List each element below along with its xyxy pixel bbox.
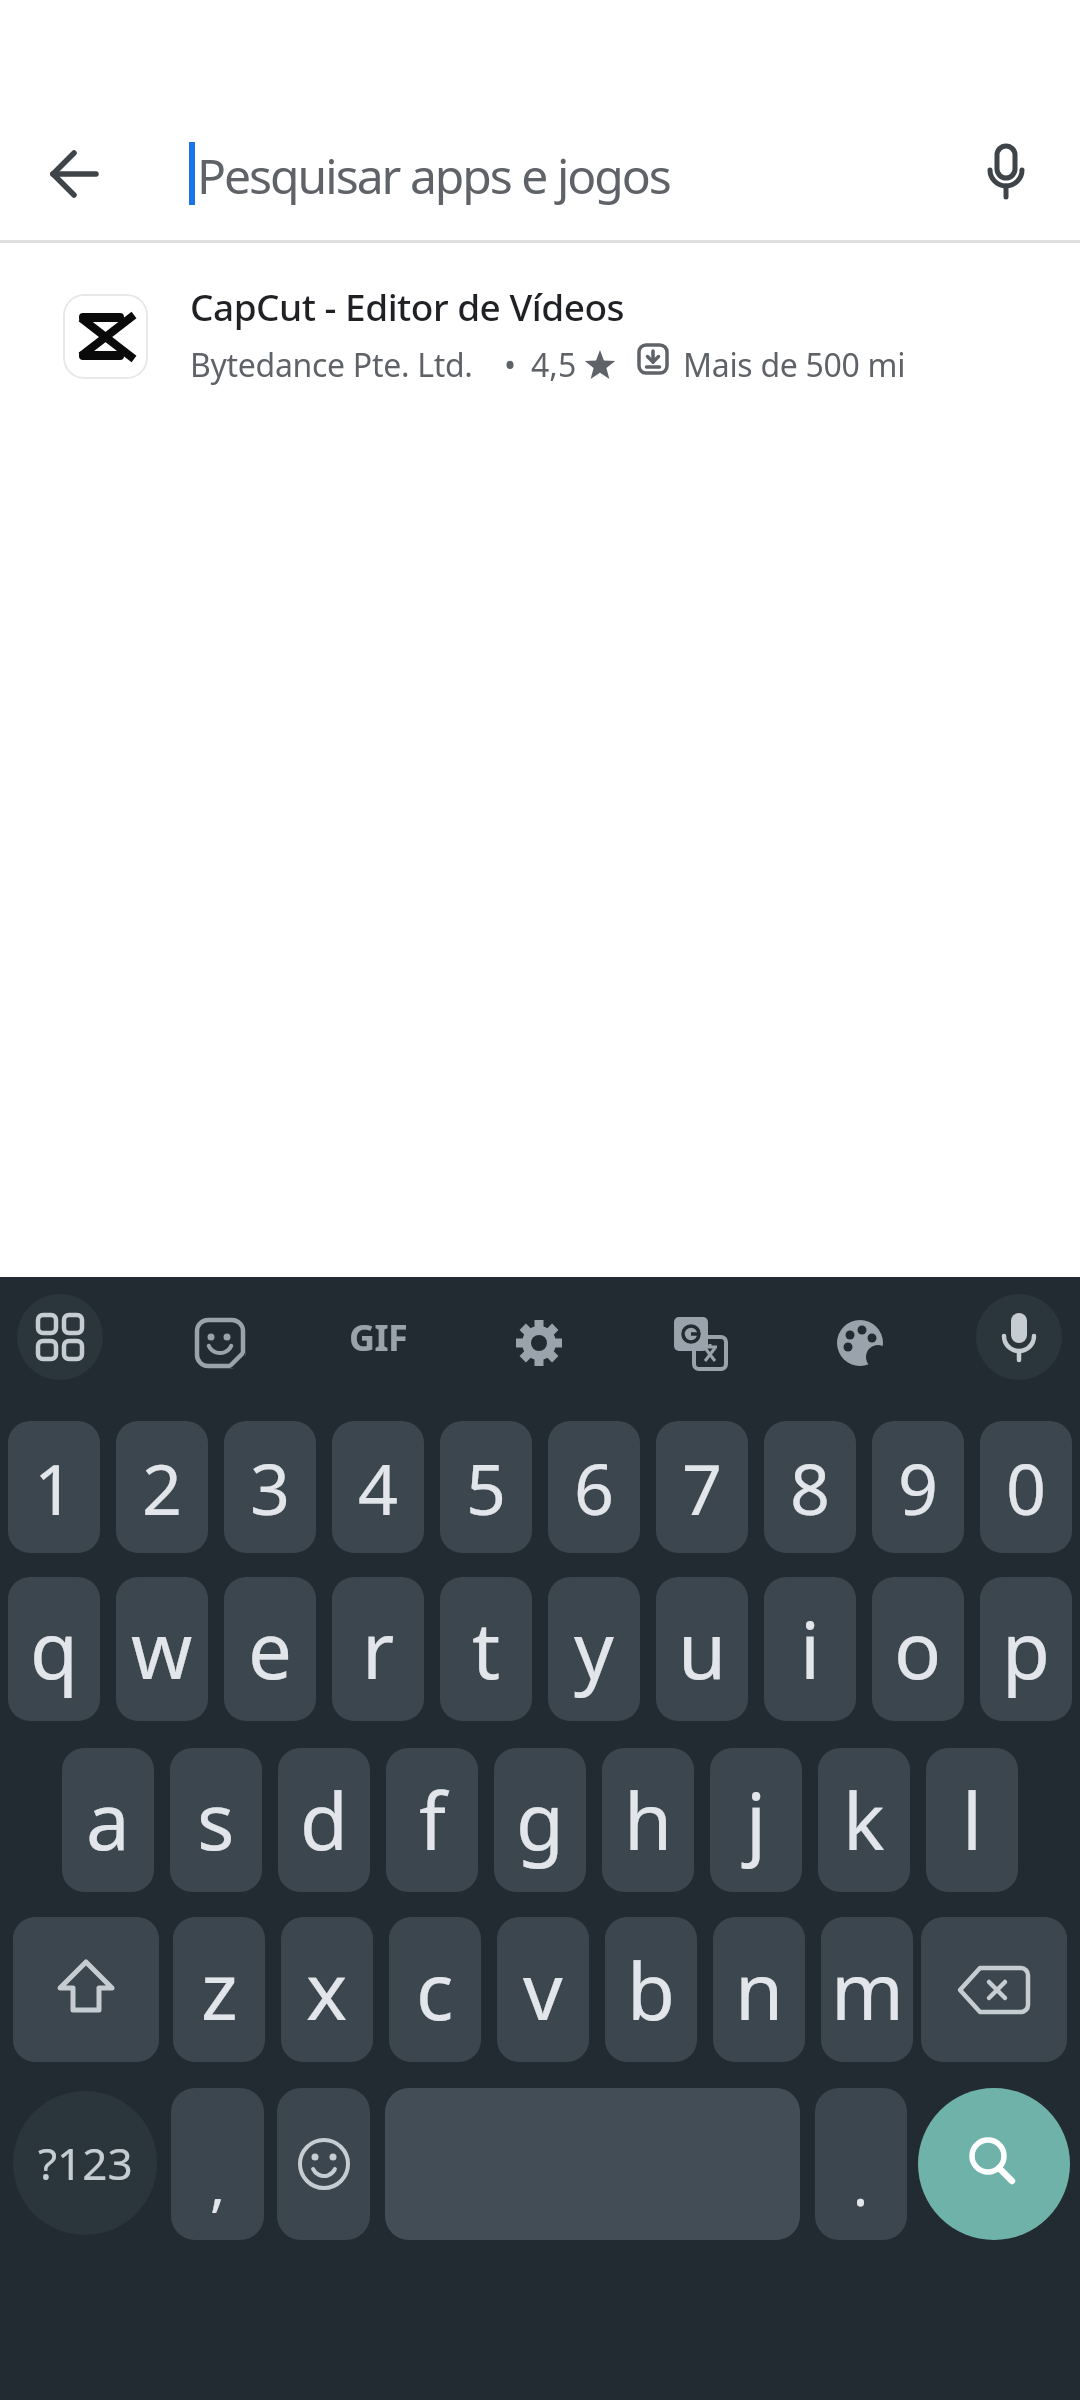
button[interactable]: d	[278, 1748, 370, 1892]
staticText: •	[504, 343, 517, 387]
button[interactable]: h	[602, 1748, 694, 1892]
button[interactable]: x	[281, 1917, 373, 2062]
button[interactable]: j	[710, 1748, 802, 1892]
staticText: GIF	[349, 1313, 408, 1362]
staticText: i	[800, 1596, 821, 1702]
staticText: ?123	[38, 2133, 133, 2193]
button[interactable]: g	[494, 1748, 586, 1892]
button[interactable]	[503, 1307, 575, 1379]
button[interactable]: t	[440, 1577, 532, 1721]
staticText: v	[523, 1937, 563, 2043]
staticText: l	[962, 1767, 983, 1873]
staticText: 0	[1006, 1440, 1047, 1535]
staticText: 5	[466, 1440, 507, 1535]
button[interactable]: 0	[980, 1421, 1072, 1553]
button[interactable]: 9	[872, 1421, 964, 1553]
button[interactable]	[960, 126, 1052, 218]
staticText: 2	[142, 1440, 183, 1535]
staticText: e	[248, 1596, 292, 1702]
staticText: 1	[34, 1440, 75, 1535]
staticText: 3	[250, 1440, 291, 1535]
button[interactable]	[17, 1294, 103, 1380]
button[interactable]: l	[926, 1748, 1018, 1892]
button[interactable]	[824, 1307, 896, 1379]
staticText: j	[746, 1767, 767, 1873]
staticText: c	[416, 1937, 454, 2043]
button[interactable]	[976, 1294, 1062, 1380]
button[interactable]: 8	[764, 1421, 856, 1553]
staticText: m	[831, 1937, 904, 2043]
button[interactable]: ,	[171, 2088, 264, 2240]
staticText: r	[362, 1596, 395, 1702]
staticText: 4,5	[531, 343, 577, 387]
button[interactable]: i	[764, 1577, 856, 1721]
button[interactable]: GIF	[330, 1307, 426, 1367]
button[interactable]: 1	[8, 1421, 100, 1553]
staticText: 4	[358, 1440, 399, 1535]
staticText: y	[574, 1596, 614, 1702]
staticText: z	[201, 1937, 238, 2043]
staticText: .	[853, 2146, 869, 2222]
button[interactable]: o	[872, 1577, 964, 1721]
button[interactable]: c	[389, 1917, 481, 2062]
staticText: CapCut - Editor de Vídeos	[190, 281, 624, 331]
staticText: p	[1002, 1596, 1050, 1702]
button[interactable]: m	[821, 1917, 913, 2062]
button[interactable]: y	[548, 1577, 640, 1721]
button[interactable]	[277, 2088, 370, 2240]
staticText: f	[419, 1767, 446, 1873]
staticText: h	[624, 1767, 673, 1873]
staticText: k	[843, 1767, 885, 1873]
button[interactable]: r	[332, 1577, 424, 1721]
button[interactable]	[30, 130, 120, 220]
button[interactable]: z	[173, 1917, 265, 2062]
button[interactable]: w	[116, 1577, 208, 1721]
button[interactable]: 4	[332, 1421, 424, 1553]
staticText: q	[30, 1596, 78, 1702]
button[interactable]	[664, 1307, 736, 1379]
button[interactable]: .	[815, 2088, 907, 2240]
button[interactable]	[918, 2088, 1070, 2240]
button[interactable]: 3	[224, 1421, 316, 1553]
staticText: 9	[898, 1440, 939, 1535]
button[interactable]	[921, 1917, 1067, 2062]
staticText: 8	[790, 1440, 831, 1535]
button[interactable]: b	[605, 1917, 697, 2062]
button[interactable]: 5	[440, 1421, 532, 1553]
button[interactable]: s	[170, 1748, 262, 1892]
staticText: 6	[574, 1440, 615, 1535]
button[interactable]	[184, 1307, 256, 1379]
button[interactable]: f	[386, 1748, 478, 1892]
button[interactable]: n	[713, 1917, 805, 2062]
button[interactable]: CapCut - Editor de Vídeos	[0, 250, 1080, 422]
button[interactable]	[13, 1917, 159, 2062]
staticText: 7	[682, 1440, 723, 1535]
staticText: w	[131, 1596, 193, 1702]
button[interactable]: q	[8, 1577, 100, 1721]
button[interactable]: Pesquisar apps e jogos	[197, 120, 897, 230]
button[interactable]: 6	[548, 1421, 640, 1553]
staticText: b	[627, 1937, 675, 2043]
button[interactable]: k	[818, 1748, 910, 1892]
staticText: o	[894, 1596, 942, 1702]
staticText: x	[306, 1937, 348, 2043]
button[interactable]: p	[980, 1577, 1072, 1721]
button[interactable]: 7	[656, 1421, 748, 1553]
button[interactable]: ?123	[13, 2091, 157, 2235]
button[interactable]: a	[62, 1748, 154, 1892]
staticText: Pesquisar apps e jogos	[197, 143, 670, 208]
staticText: a	[86, 1767, 130, 1873]
staticText: t	[472, 1596, 501, 1702]
button[interactable]: 2	[116, 1421, 208, 1553]
button[interactable]: u	[656, 1577, 748, 1721]
button[interactable]	[385, 2088, 800, 2240]
staticText: n	[735, 1937, 784, 2043]
staticText: u	[678, 1596, 727, 1702]
button[interactable]: v	[497, 1917, 589, 2062]
button[interactable]: e	[224, 1577, 316, 1721]
staticText: d	[300, 1767, 348, 1873]
staticText: Bytedance Pte. Ltd.	[190, 343, 473, 387]
staticText: Mais de 500 mi	[683, 343, 906, 387]
staticText: s	[197, 1767, 235, 1873]
staticText: g	[516, 1767, 564, 1873]
